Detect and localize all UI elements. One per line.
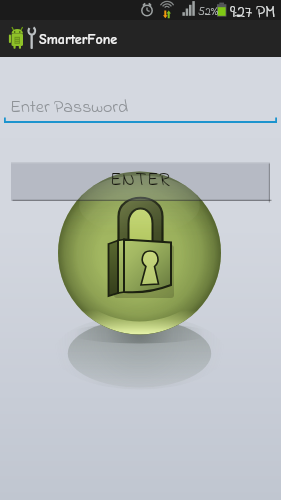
staticText: 9:27 PM <box>230 0 276 20</box>
button[interactable]: Enter Password <box>4 96 277 124</box>
staticText: 52% <box>198 3 219 21</box>
button[interactable]: Unlock <box>0 0 281 500</box>
staticText: ENTER <box>110 167 171 195</box>
staticText: Enter Password <box>10 95 129 121</box>
button[interactable]: ENTER <box>11 162 270 201</box>
staticText: SmarterFone <box>39 31 118 47</box>
